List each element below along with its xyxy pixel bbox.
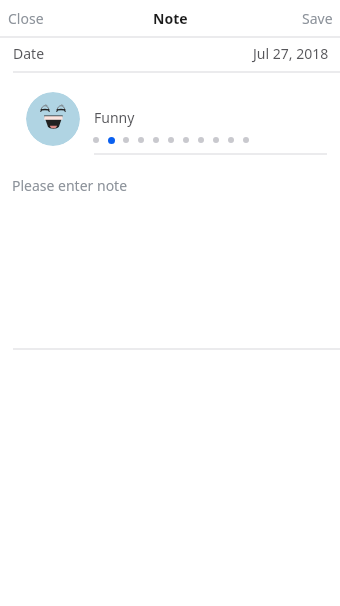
staticText: Note: [153, 9, 188, 28]
staticText: Funny: [94, 108, 135, 127]
staticText: Save: [302, 9, 333, 28]
staticText: Date: [13, 44, 45, 63]
button[interactable]: Close: [0, 0, 54, 36]
button[interactable]: Save: [292, 0, 340, 36]
staticText: Jul 27, 2018: [253, 44, 329, 63]
button[interactable]: Please enter note: [0, 165, 340, 348]
staticText: Close: [8, 9, 44, 28]
button[interactable]: Mood intensity: [93, 132, 249, 148]
staticText: Please enter note: [12, 176, 128, 195]
button[interactable]: Funny mood: [26, 92, 80, 146]
button[interactable]: Date: [0, 36, 340, 70]
